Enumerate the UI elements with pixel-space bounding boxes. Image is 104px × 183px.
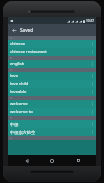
staticText: Saved [20, 27, 34, 33]
button[interactable]: More options [91, 48, 94, 56]
staticText: 中国东方航空 [10, 130, 91, 135]
button[interactable]: chinese restaurant [8, 48, 96, 56]
button[interactable]: Recent apps [71, 155, 85, 166]
button[interactable]: love [8, 72, 96, 80]
button[interactable]: More options [91, 100, 94, 108]
button[interactable]: Navigate up [8, 24, 20, 36]
button[interactable]: More options [91, 88, 94, 96]
staticText: welcome [10, 101, 91, 107]
button[interactable]: More options [91, 60, 94, 68]
button[interactable]: chinese [8, 40, 96, 48]
button[interactable]: english [8, 60, 96, 68]
button[interactable]: love child [8, 80, 96, 88]
staticText: welcome to [10, 109, 91, 115]
staticText: love [10, 73, 91, 79]
button[interactable]: More options [91, 80, 94, 88]
button[interactable]: More options [91, 120, 94, 128]
button[interactable]: 中国东方航空 [8, 128, 96, 136]
staticText: chinese [10, 41, 91, 47]
staticText: 中国 [10, 122, 91, 127]
staticText: english [10, 61, 91, 67]
button[interactable]: More options [91, 72, 94, 80]
button[interactable]: More options [91, 40, 94, 48]
staticText: love child [10, 81, 91, 87]
staticText: loveable [10, 89, 91, 95]
staticText: chinese restaurant [10, 49, 91, 55]
button[interactable]: Home [45, 155, 59, 166]
button[interactable]: More options [91, 108, 94, 116]
button[interactable]: 中国 [8, 120, 96, 128]
button[interactable]: Back [20, 155, 34, 166]
button[interactable]: welcome to [8, 108, 96, 116]
button[interactable]: More options [91, 128, 94, 136]
staticText: 10:37 [86, 19, 95, 23]
button[interactable]: welcome [8, 100, 96, 108]
button[interactable]: loveable [8, 88, 96, 96]
